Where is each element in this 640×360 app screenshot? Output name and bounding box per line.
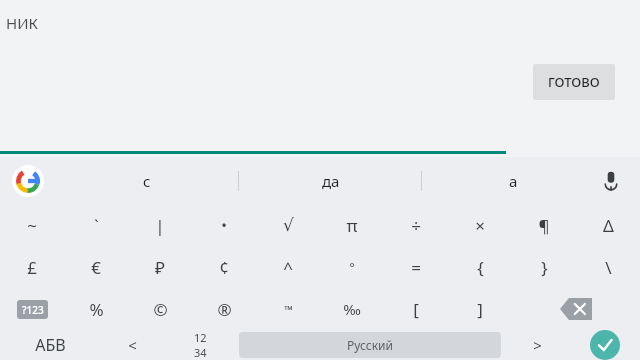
staticText: с <box>143 171 151 191</box>
button[interactable]: ™ <box>256 288 320 330</box>
button[interactable]: ] <box>448 288 512 330</box>
staticText: ] <box>477 298 483 321</box>
button[interactable]: π <box>320 204 384 246</box>
button[interactable]: } <box>512 246 576 288</box>
button[interactable]: АБВ <box>0 330 100 360</box>
button[interactable]: Voice input <box>594 164 628 198</box>
staticText: Русский <box>347 337 393 353</box>
button[interactable]: = <box>384 246 448 288</box>
button[interactable]: да <box>239 157 422 204</box>
staticText: € <box>91 256 101 279</box>
staticText: ™ <box>284 302 293 317</box>
staticText: π <box>346 214 358 237</box>
staticText: < <box>128 335 137 355</box>
staticText: = <box>411 256 421 279</box>
button[interactable]: > <box>505 330 570 360</box>
staticText: ` <box>94 214 99 237</box>
button[interactable]: Backspace <box>512 288 640 330</box>
button[interactable]: Google search <box>12 165 44 197</box>
button[interactable]: ‰ <box>320 288 384 330</box>
staticText: \ <box>605 256 612 279</box>
button[interactable]: Δ <box>576 204 640 246</box>
button[interactable]: ÷ <box>384 204 448 246</box>
button[interactable]: Русский <box>239 332 501 358</box>
button[interactable]: [ <box>384 288 448 330</box>
staticText: % <box>89 298 104 321</box>
button[interactable]: ¢ <box>192 246 256 288</box>
staticText: | <box>155 214 165 237</box>
button[interactable]: √ <box>256 204 320 246</box>
staticText: АБВ <box>35 334 66 356</box>
button[interactable]: < <box>100 330 165 360</box>
staticText: © <box>153 298 168 321</box>
staticText: ¶ <box>538 214 550 237</box>
button[interactable]: ^ <box>256 246 320 288</box>
button[interactable]: ° <box>320 246 384 288</box>
button[interactable]: ₽ <box>128 246 192 288</box>
button[interactable]: \ <box>576 246 640 288</box>
button[interactable]: ?123 <box>0 288 64 330</box>
staticText: × <box>475 214 485 237</box>
button[interactable]: © <box>128 288 192 330</box>
button[interactable]: % <box>64 288 128 330</box>
staticText: ® <box>217 298 232 321</box>
staticText: НИК <box>6 13 38 33</box>
staticText: ~ <box>27 214 37 237</box>
staticText: > <box>533 335 542 355</box>
button[interactable]: • <box>192 204 256 246</box>
staticText: 12 <box>194 330 207 345</box>
button[interactable]: Numbers <box>165 330 235 360</box>
button[interactable]: с <box>55 157 239 204</box>
button[interactable]: Enter <box>570 330 640 360</box>
button[interactable]: € <box>64 246 128 288</box>
button[interactable]: { <box>448 246 512 288</box>
staticText: £ <box>27 256 37 279</box>
button[interactable]: а <box>422 157 605 204</box>
staticText: ГОТОВО <box>548 73 600 91</box>
staticText: } <box>541 256 548 279</box>
staticText: ₽ <box>155 256 165 279</box>
button[interactable]: ~ <box>0 204 64 246</box>
staticText: а <box>509 171 518 191</box>
staticText: [ <box>413 298 419 321</box>
button[interactable]: ® <box>192 288 256 330</box>
button[interactable]: ` <box>64 204 128 246</box>
staticText: да <box>322 171 340 191</box>
button[interactable]: ГОТОВО <box>533 64 615 100</box>
staticText: ‰ <box>343 299 361 319</box>
staticText: 34 <box>194 345 207 360</box>
button[interactable]: × <box>448 204 512 246</box>
button[interactable]: £ <box>0 246 64 288</box>
staticText: ÷ <box>411 214 421 237</box>
staticText: ?123 <box>22 303 44 317</box>
staticText: • <box>221 215 227 235</box>
staticText: { <box>477 256 484 279</box>
staticText: ¢ <box>219 256 229 279</box>
button[interactable]: | <box>128 204 192 246</box>
button[interactable]: ¶ <box>512 204 576 246</box>
staticText: ° <box>349 258 355 276</box>
staticText: √ <box>283 215 294 235</box>
staticText: ^ <box>283 256 293 279</box>
staticText: Δ <box>603 214 614 237</box>
